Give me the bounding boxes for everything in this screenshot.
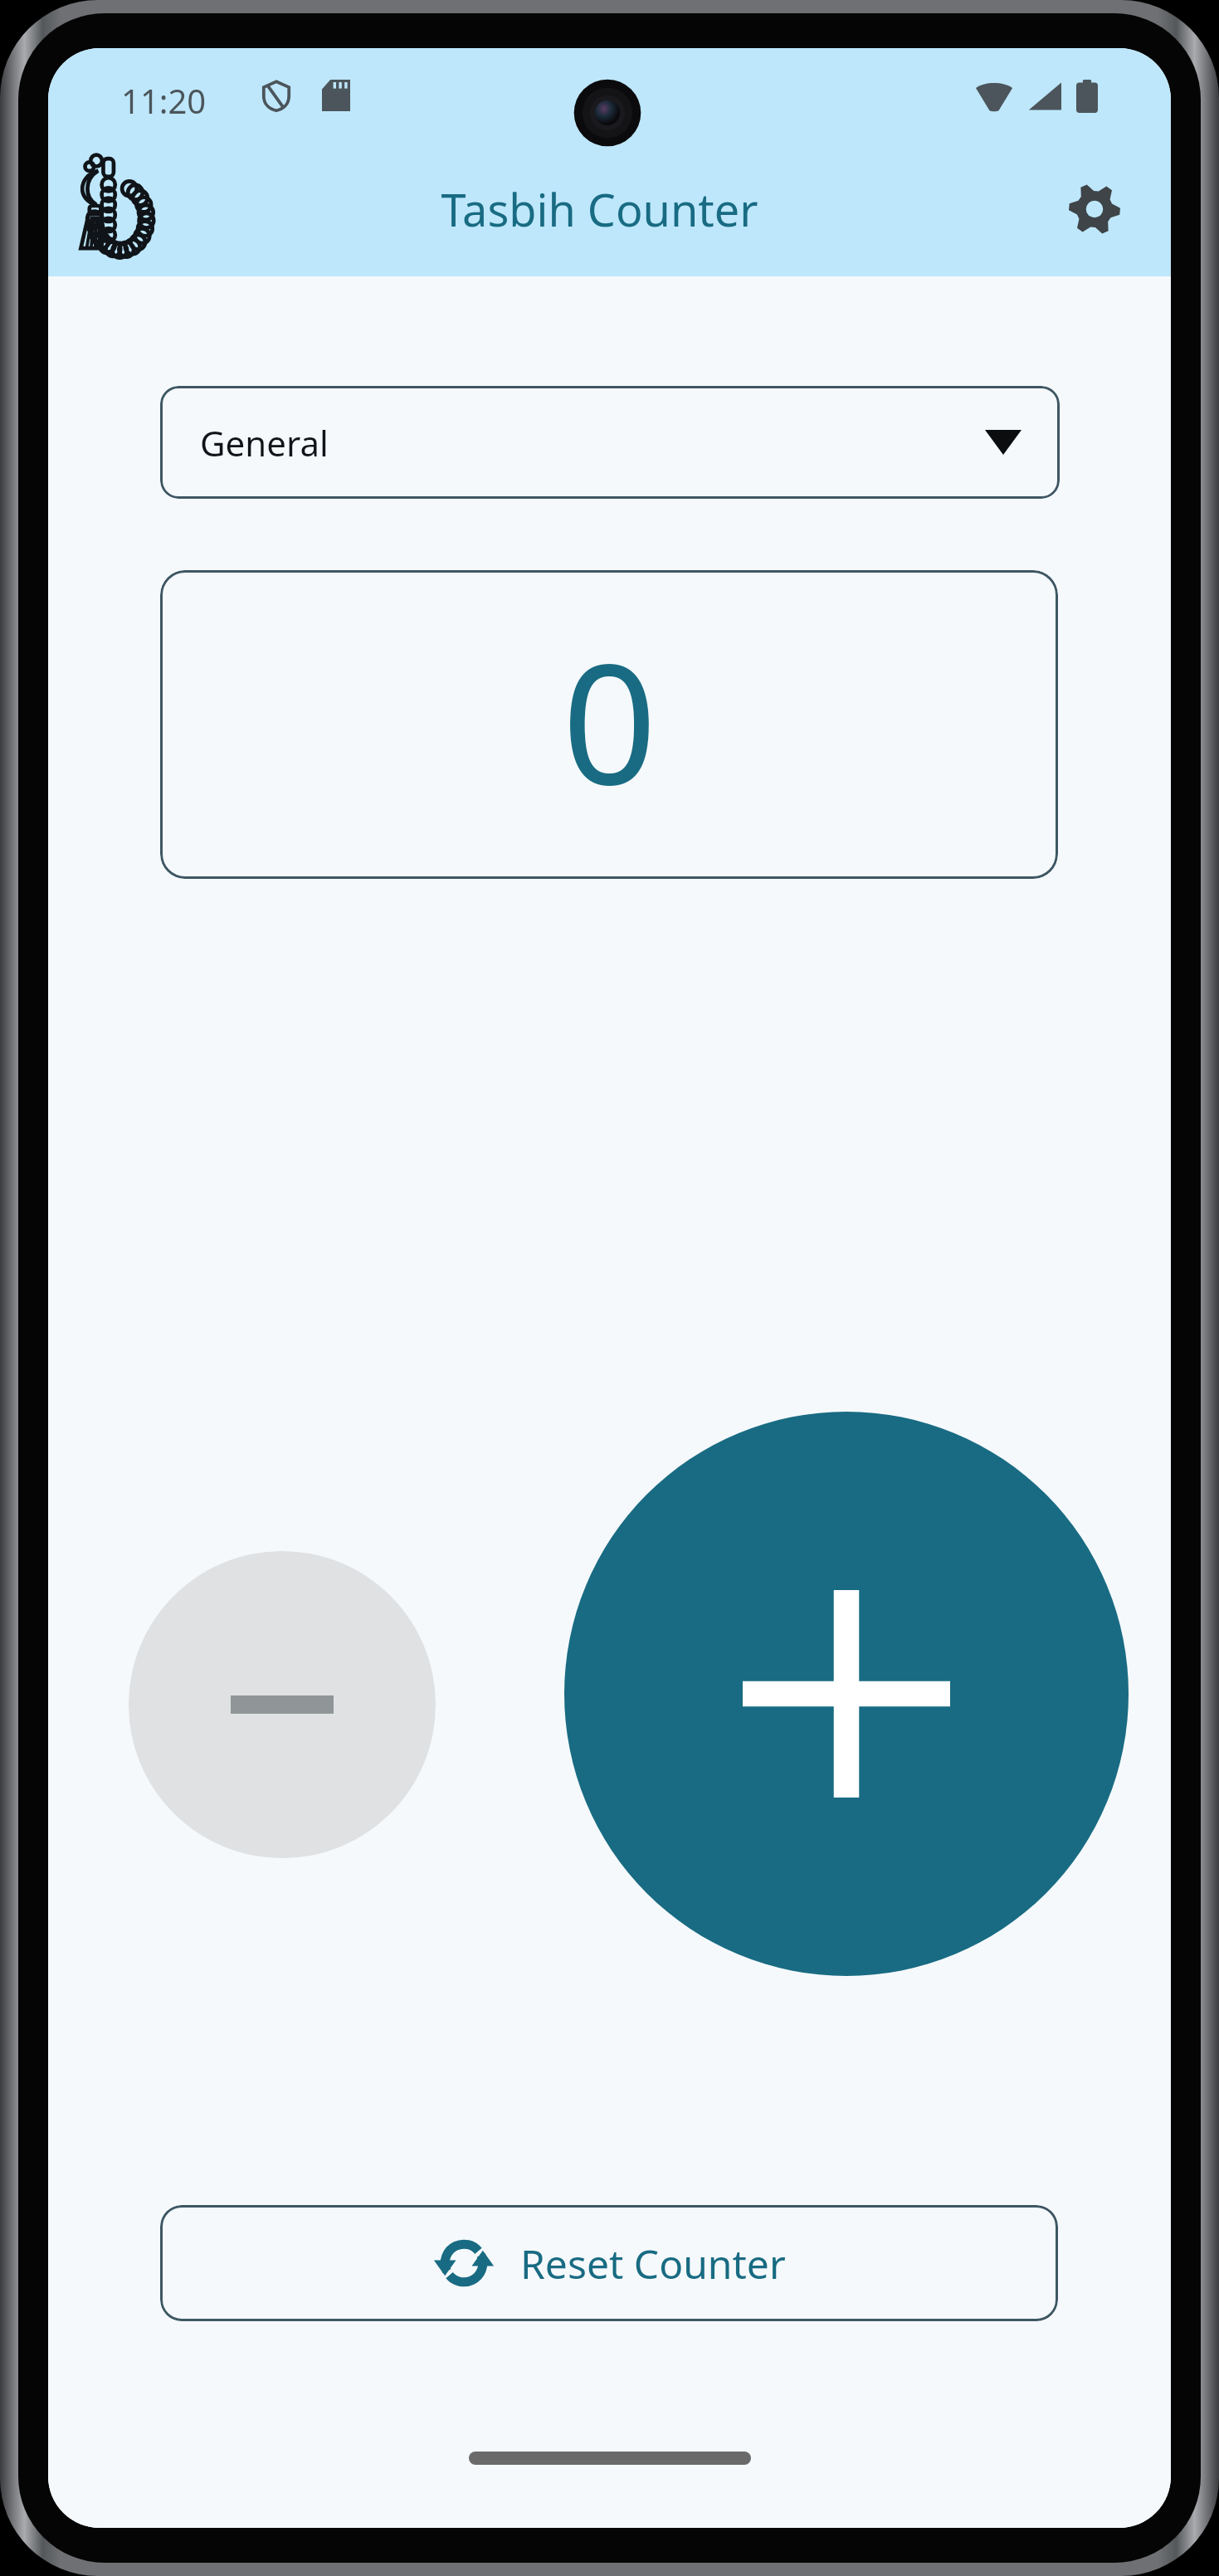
button[interactable]: Reset Counter xyxy=(160,2205,1058,2321)
button[interactable]: Tasbih xyxy=(66,148,164,264)
button[interactable]: General xyxy=(160,386,1060,499)
staticText: 11:20 xyxy=(121,78,207,123)
staticText: 0 xyxy=(562,607,657,832)
staticText: Tasbih Counter xyxy=(441,178,758,240)
staticText: General xyxy=(200,419,329,466)
button[interactable]: Settings xyxy=(1055,169,1134,249)
button[interactable]: Increment xyxy=(564,1412,1129,1976)
button[interactable]: Decrement xyxy=(129,1551,436,1858)
staticText: Reset Counter xyxy=(520,2237,786,2291)
button[interactable]: 0 xyxy=(160,570,1058,879)
